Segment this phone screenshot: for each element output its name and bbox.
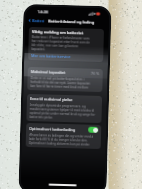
- staticText: batteriets ytelse.: [29, 115, 53, 120]
- staticText: optimal ytelse under normal bruk og sørg…: [30, 111, 96, 117]
- staticText: Viktig melding om batteriet: [32, 29, 84, 35]
- staticText: kapasitet.: [31, 47, 45, 51]
- staticText: Dette er et mål på batterikapasiteten i: [30, 76, 85, 81]
- button[interactable]: Maksimal kapasitet: [27, 67, 103, 92]
- staticText: maskinvaresystemer hjelper til med å bid…: [30, 107, 95, 113]
- button[interactable]: Viktig melding om batteriet: [28, 27, 104, 62]
- other: Optimalisert batterilading på: [88, 127, 98, 133]
- staticText: har redusert kapasitet etter hvert som d…: [32, 39, 91, 45]
- staticText: Optimalisert batterilading: [29, 126, 76, 132]
- staticText: 76 %: [91, 71, 100, 76]
- staticText: Batteritilstand og lading: [48, 18, 95, 25]
- staticText: Mer om batteriservice: [31, 53, 71, 59]
- staticText: Batteri: [32, 18, 45, 23]
- staticText: kan føre til færre timer med bruk mellom: [30, 84, 88, 90]
- staticText: forhold til da det var nytt. Lavere kapa…: [30, 80, 90, 86]
- button[interactable]: Evne til maksimal ytelse: [26, 94, 102, 123]
- button[interactable]: Batteri: [25, 17, 47, 24]
- staticText: blir eldre, noe som kan gi kortere: [31, 43, 79, 48]
- staticText: lade forbi 80 % til du trenger å bruke d…: [29, 137, 88, 143]
- staticText: Maksimal kapasitet: [31, 69, 66, 75]
- staticText: Innebygde dynamiske programvare- og: [30, 103, 86, 109]
- staticText: Evne til maksimal ytelse: [30, 96, 73, 102]
- staticText: Batteriene i iPhone er forbruksvarer som: [32, 35, 90, 41]
- button[interactable]: Optimalisert batterilading: [29, 125, 98, 133]
- staticText: 14:28: [37, 9, 48, 15]
- staticText: iPhone lærer av ladingen din og venter m…: [29, 133, 94, 139]
- staticText: Optimalisert lading aktiveres kun på ste…: [29, 141, 91, 147]
